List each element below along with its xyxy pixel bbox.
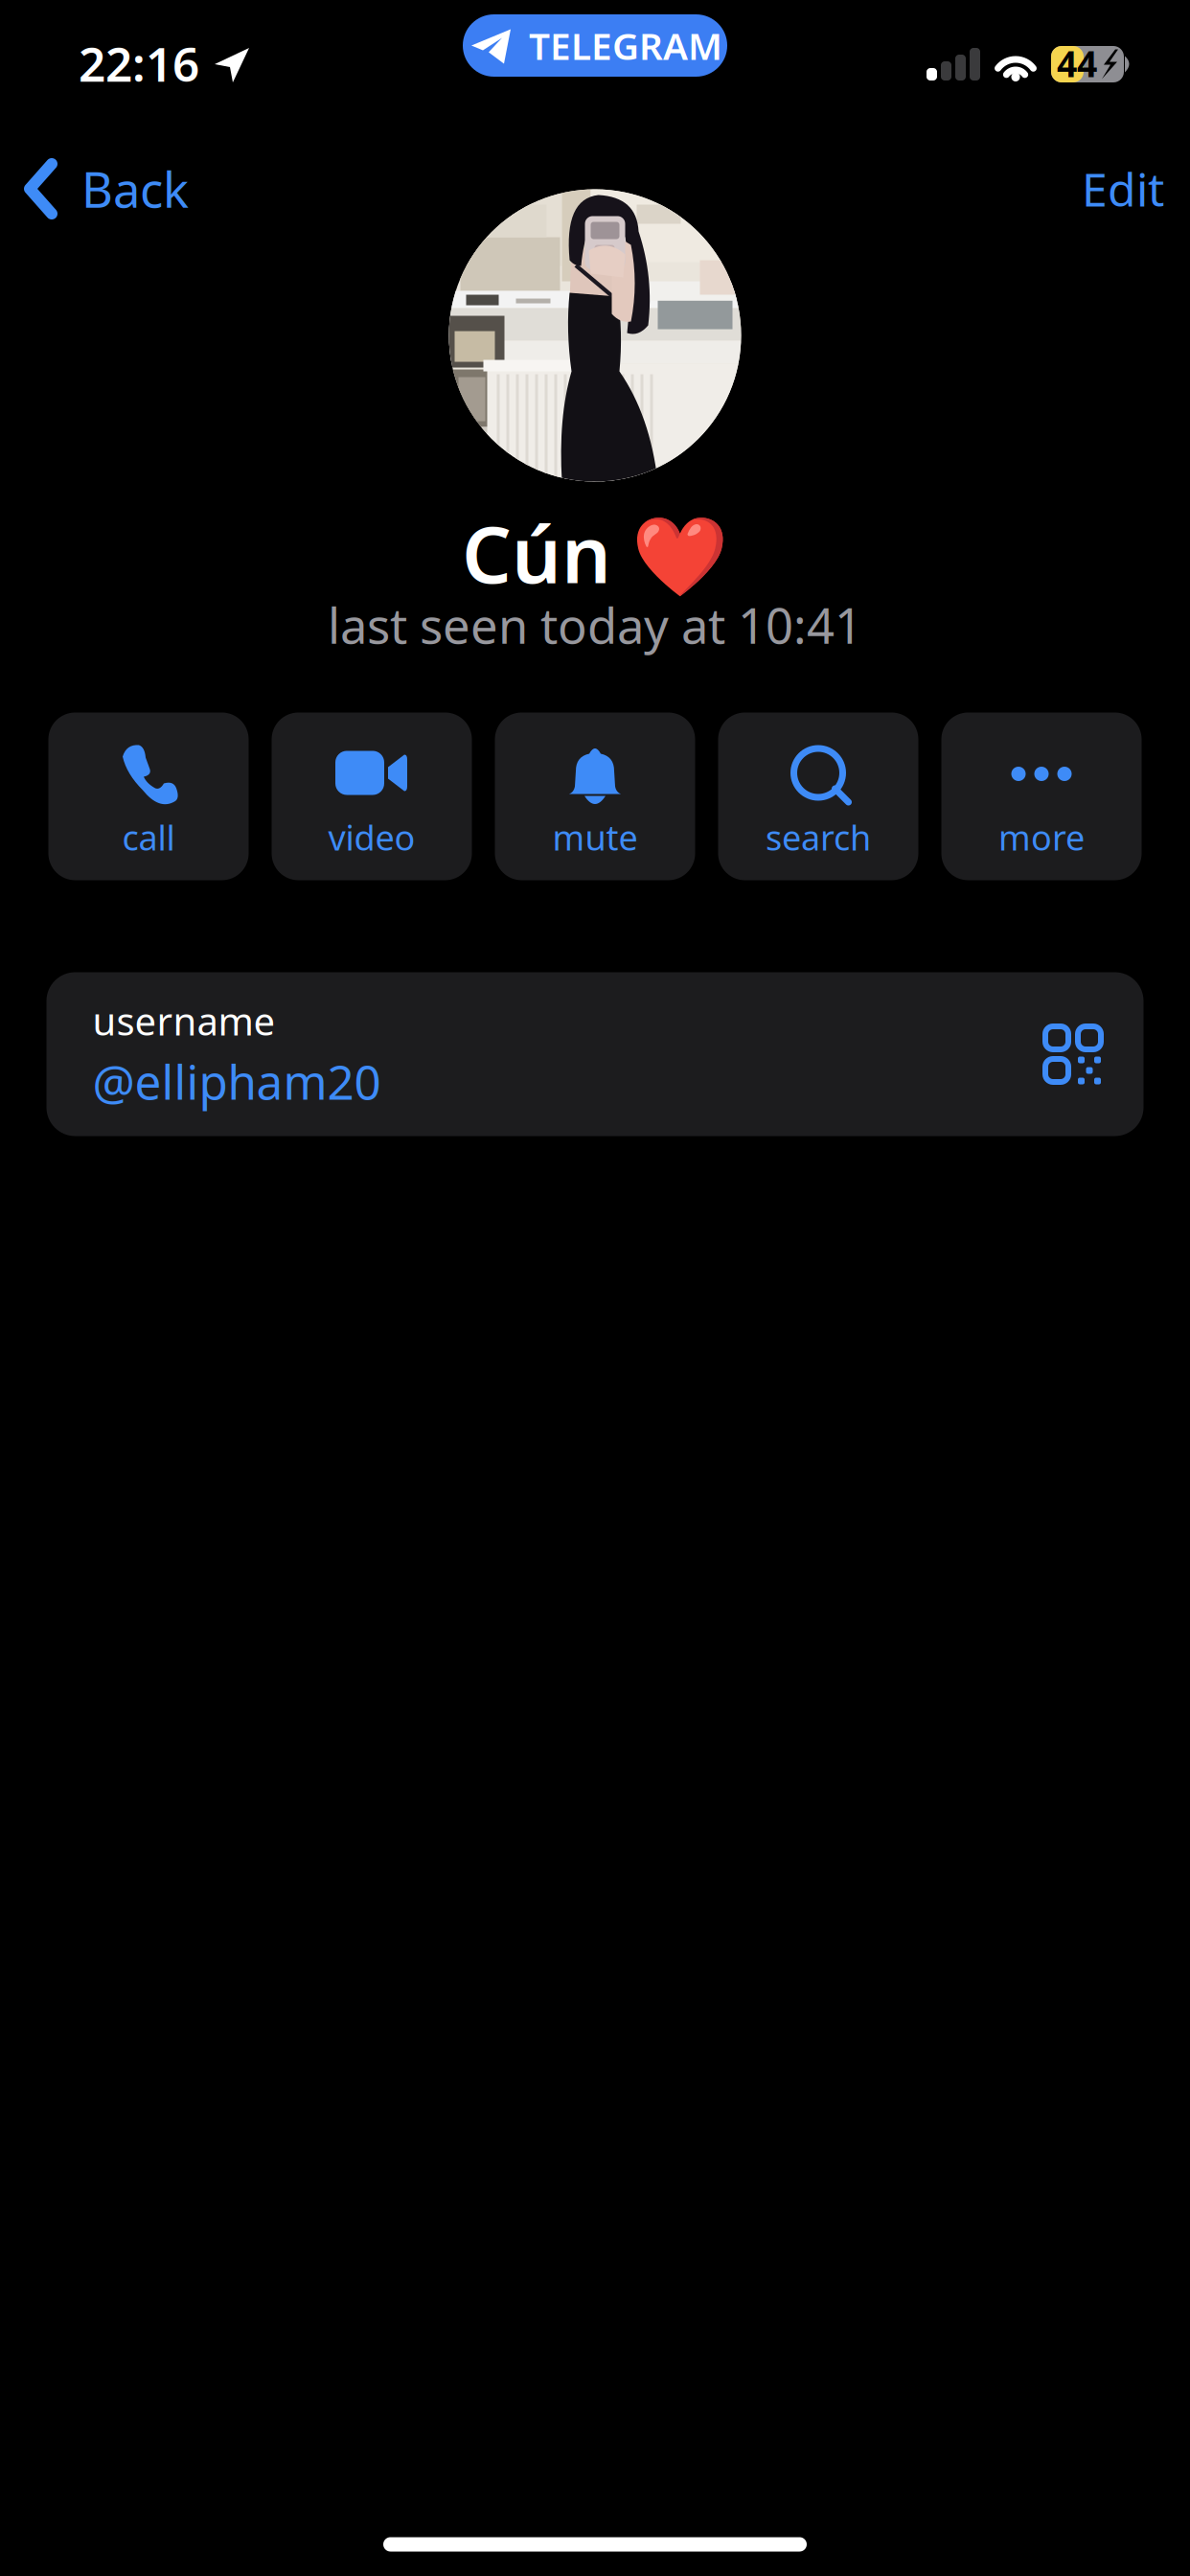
button[interactable]: video xyxy=(272,713,472,880)
staticText: mute xyxy=(552,814,638,860)
staticText: 44 xyxy=(1057,39,1097,87)
staticText: search xyxy=(766,814,871,860)
staticText: Back xyxy=(81,157,189,221)
staticText: 22:16 xyxy=(79,32,199,95)
button[interactable]: Edit xyxy=(960,143,1190,235)
staticText: more xyxy=(998,814,1085,860)
button[interactable]: Back xyxy=(0,143,287,235)
button[interactable]: Show QR code xyxy=(1027,1008,1119,1100)
staticText: username xyxy=(92,995,275,1046)
staticText: Edit xyxy=(1082,158,1164,219)
button[interactable]: more xyxy=(941,713,1142,880)
staticText: call xyxy=(122,814,175,860)
button[interactable]: search xyxy=(718,713,918,880)
button[interactable]: username xyxy=(46,972,1144,1136)
staticText: Cún ❤️ xyxy=(462,501,728,605)
button[interactable]: mute xyxy=(495,713,695,880)
staticText: TELEGRAM xyxy=(529,21,722,70)
staticText: last seen today at 10:41 xyxy=(328,593,862,657)
staticText: video xyxy=(328,814,415,860)
staticText: @ellipham20 xyxy=(92,1050,381,1113)
button[interactable]: call xyxy=(48,713,249,880)
